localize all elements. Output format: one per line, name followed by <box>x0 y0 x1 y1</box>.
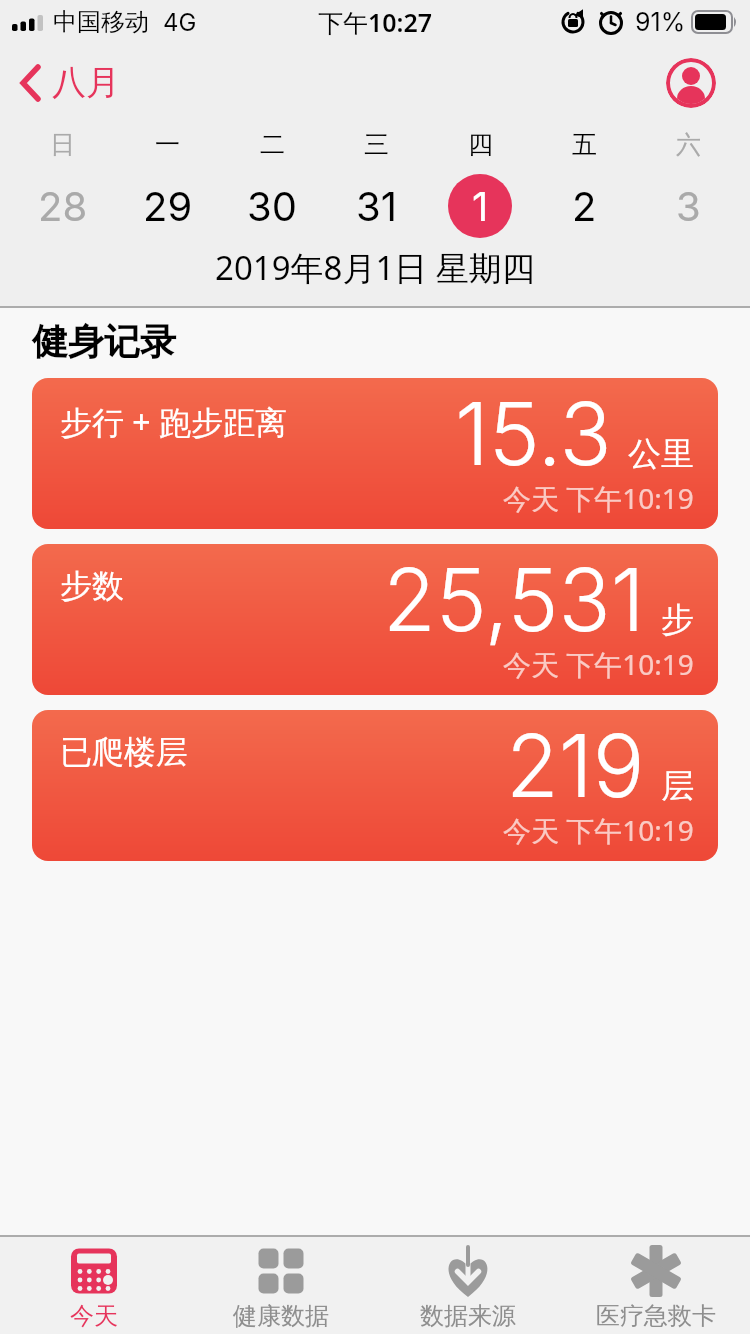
button[interactable]: 2 <box>552 174 616 238</box>
button[interactable]: 今天 <box>0 1237 187 1334</box>
staticText: 2019年8月1日 星期四 <box>215 245 535 290</box>
staticText: 六 <box>676 129 701 160</box>
staticText: 1 <box>472 182 489 230</box>
button[interactable]: 八月 <box>18 61 120 104</box>
button[interactable]: 步数 <box>32 544 718 695</box>
staticText: 步 <box>661 599 694 641</box>
button[interactable]: 31 <box>344 174 408 238</box>
staticText: 2 <box>572 182 597 230</box>
staticText: 公里 <box>628 433 694 475</box>
button[interactable] <box>666 58 716 108</box>
staticText: 步数 <box>60 566 124 606</box>
button[interactable]: 29 <box>136 174 200 238</box>
staticText: 一 <box>155 129 180 160</box>
staticText: 层 <box>661 765 694 807</box>
staticText: 29 <box>143 182 193 230</box>
staticText: 91% <box>635 7 686 37</box>
button[interactable]: 3 <box>656 174 720 238</box>
staticText: 步行 + 跑步距离 <box>60 400 287 444</box>
button[interactable]: 30 <box>240 174 304 238</box>
button[interactable]: 28 <box>31 174 95 238</box>
staticText: 25,531 <box>383 548 645 652</box>
staticText: 今天 下午10:19 <box>503 811 694 849</box>
button[interactable]: 步行 + 跑步距离 <box>32 378 718 529</box>
staticText: 数据来源 <box>420 1301 516 1331</box>
staticText: 30 <box>247 182 297 230</box>
staticText: 今天 下午10:19 <box>503 645 694 683</box>
staticText: 今天 <box>70 1301 118 1331</box>
staticText: 四 <box>468 129 493 160</box>
staticText: 医疗急救卡 <box>596 1301 716 1331</box>
staticText: 健康数据 <box>233 1301 329 1331</box>
staticText: 下午10:27 <box>318 5 433 39</box>
staticText: 八月 <box>52 61 120 104</box>
staticText: 28 <box>38 182 88 230</box>
staticText: 已爬楼层 <box>60 732 188 772</box>
button[interactable]: 1 <box>448 174 512 238</box>
button[interactable]: 数据来源 <box>374 1237 562 1334</box>
staticText: 31 <box>356 182 397 230</box>
staticText: 二 <box>260 129 285 160</box>
staticText: 三 <box>364 129 389 160</box>
staticText: 15.3 <box>455 382 612 486</box>
staticText: 中国移动 <box>53 7 149 37</box>
staticText: 219 <box>506 714 645 818</box>
staticText: 4G <box>163 8 197 37</box>
staticText: 日 <box>50 129 75 160</box>
button[interactable]: 医疗急救卡 <box>562 1237 750 1334</box>
staticText: 今天 下午10:19 <box>503 479 694 517</box>
button[interactable]: 已爬楼层 <box>32 710 718 861</box>
staticText: 3 <box>676 182 701 230</box>
staticText: 健身记录 <box>32 319 176 364</box>
button[interactable]: 健康数据 <box>187 1237 374 1334</box>
staticText: 五 <box>572 129 597 160</box>
